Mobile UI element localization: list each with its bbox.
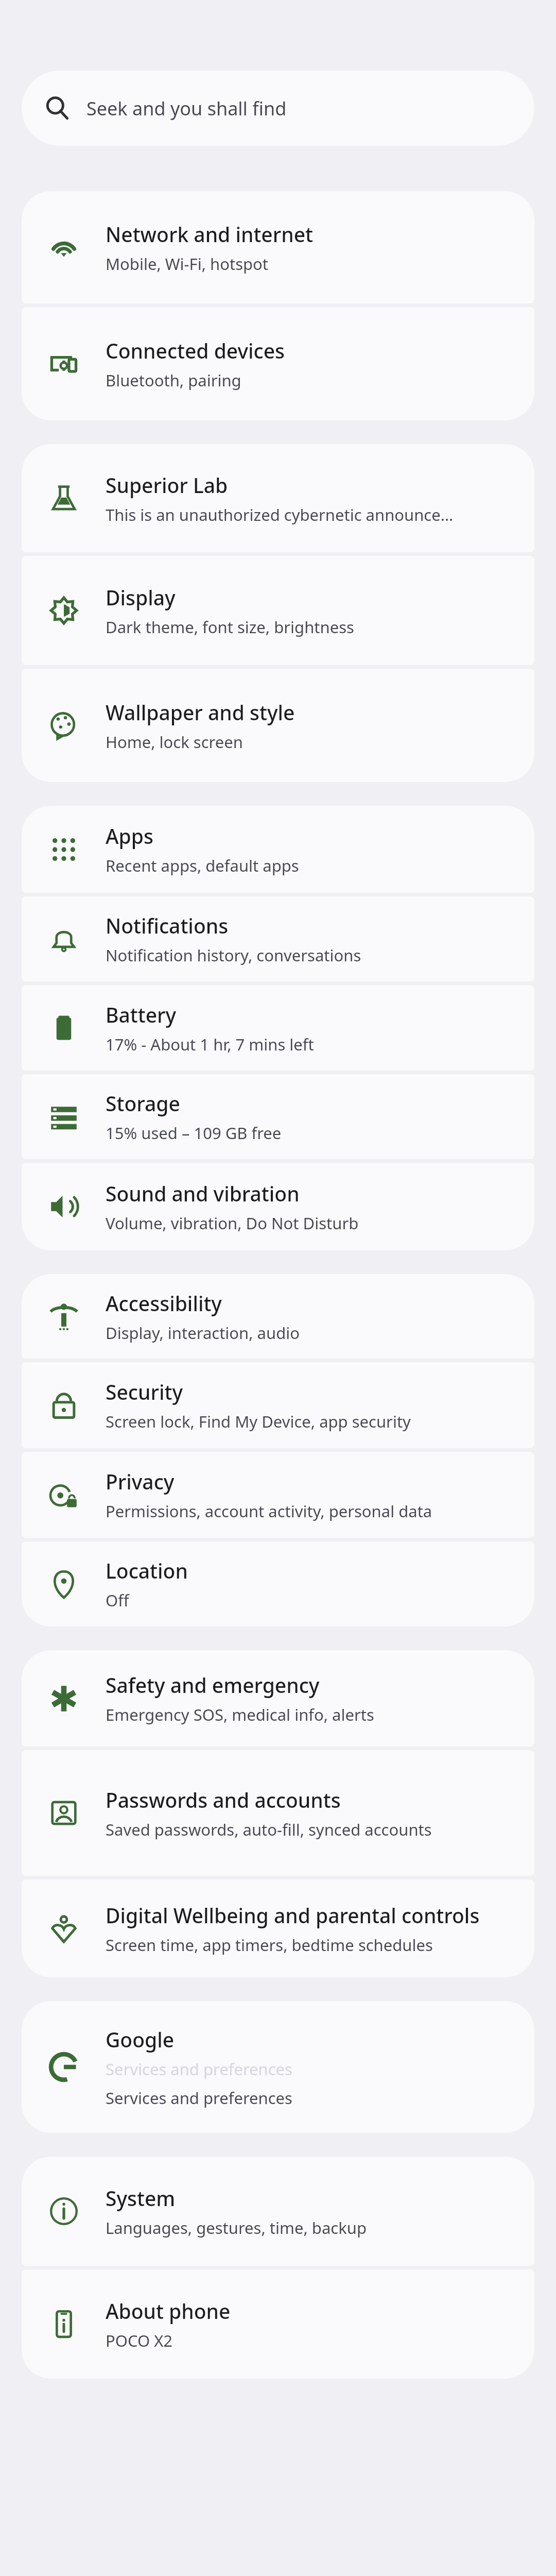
staticText: Volume, vibration, Do Not Disturb [106,1212,359,1234]
staticText: Safety and emergency [106,1671,320,1699]
button[interactable]: Sound and vibration [22,1163,534,1250]
button[interactable]: System [22,2157,534,2266]
staticText: Bluetooth, pairing [106,369,241,391]
staticText: Recent apps, default apps [106,855,299,876]
button[interactable]: Privacy [22,1452,534,1538]
staticText: Languages, gestures, time, backup [106,2217,367,2239]
staticText: Battery [106,1001,177,1028]
staticText: Notifications [106,912,229,939]
staticText: This is an unauthorized cybernetic annou… [106,504,454,526]
staticText: Mobile, Wi-Fi, hotspot [106,253,269,275]
button[interactable]: Superior Lab [22,444,534,552]
button[interactable]: Passwords and accounts [22,1750,534,1876]
staticText: 15% used – 109 GB free [106,1122,282,1144]
staticText: Screen lock, Find My Device, app securit… [106,1411,411,1432]
staticText: Notification history, conversations [106,944,361,966]
staticText: Apps [106,822,153,850]
staticText: Seek and you shall find [86,96,287,121]
staticText: Privacy [106,1468,175,1495]
button[interactable]: Apps [22,806,534,893]
button[interactable]: Display [22,556,534,665]
button[interactable]: Notifications [22,896,534,981]
staticText: Accessibility [106,1290,222,1317]
button[interactable]: Battery [22,985,534,1071]
button[interactable]: Safety and emergency [22,1650,534,1747]
button[interactable]: Location [22,1541,534,1626]
staticText: Services and preferences [106,2087,292,2109]
button[interactable]: Storage [22,1074,534,1159]
staticText: Security [106,1378,183,1405]
staticText: Google [106,2026,175,2053]
staticText: Home, lock screen [106,731,243,753]
staticText: Display [106,584,176,611]
staticText: 17% - About 1 hr, 7 mins left [106,1033,314,1055]
staticText: Wallpaper and style [106,699,295,726]
staticText: Location [106,1557,188,1584]
staticText: Superior Lab [106,471,228,499]
staticText: Permissions, account activity, personal … [106,1500,432,1522]
staticText: Display, interaction, audio [106,1322,300,1344]
staticText: Passwords and accounts [106,1786,341,1814]
staticText: Services and preferences [106,2058,292,2080]
button[interactable]: Digital Wellbeing and parental controls [22,1879,534,1977]
staticText: Emergency SOS, medical info, alerts [106,1704,374,1725]
button[interactable]: Network and internet [22,191,534,303]
staticText: Connected devices [106,337,285,364]
staticText: System [106,2184,176,2212]
staticText: Off [106,1589,129,1611]
staticText: Dark theme, font size, brightness [106,616,354,638]
button[interactable]: Connected devices [22,307,534,420]
staticText: Storage [106,1090,180,1117]
staticText: Saved passwords, auto-fill, synced accou… [106,1819,432,1840]
button[interactable]: Google [22,2001,534,2133]
staticText: Network and internet [106,221,313,248]
button[interactable]: Accessibility [22,1274,534,1359]
staticText: Screen time, app timers, bedtime schedul… [106,1934,433,1956]
button[interactable]: About phone [22,2269,534,2379]
button[interactable]: Wallpaper and style [22,669,534,782]
staticText: Digital Wellbeing and parental controls [106,1902,480,1929]
staticText: POCO X2 [106,2330,173,2351]
staticText: About phone [106,2297,231,2325]
button[interactable]: Search settings [22,71,534,146]
staticText: Sound and vibration [106,1180,300,1207]
button[interactable]: Security [22,1362,534,1448]
